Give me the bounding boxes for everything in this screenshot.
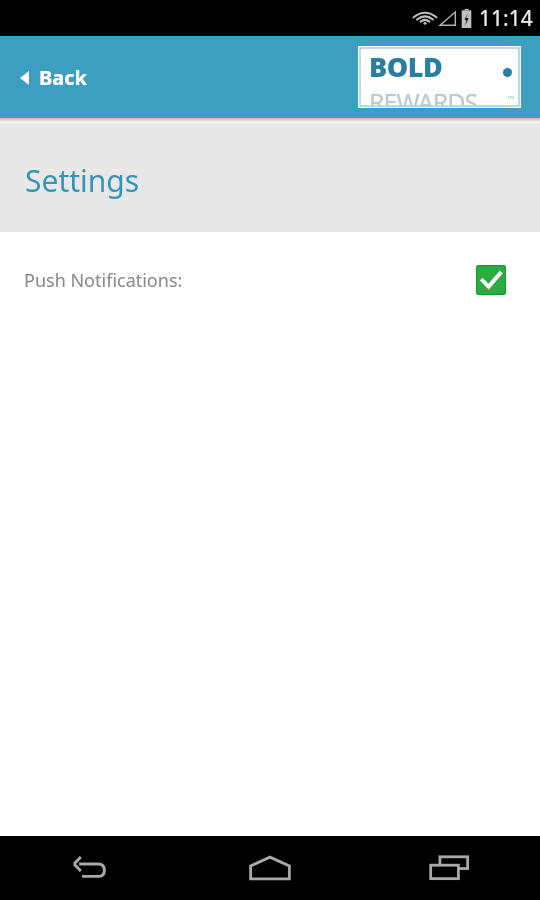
staticText: 11:14 — [479, 4, 533, 33]
staticText: Settings — [25, 160, 140, 201]
staticText: тм — [507, 93, 515, 101]
staticText: Push Notifications: — [24, 268, 183, 293]
button[interactable]: Push notifications enabled — [476, 265, 506, 295]
staticText: Back — [39, 64, 87, 91]
staticText: BOLD — [369, 48, 443, 85]
button[interactable]: Back — [0, 54, 105, 101]
button[interactable]: Home — [180, 836, 360, 900]
button[interactable]: Recent apps — [360, 836, 540, 900]
button[interactable]: Bold Rewards — [360, 48, 519, 106]
button[interactable]: Push Notifications: — [0, 232, 540, 328]
button[interactable]: Back — [0, 836, 180, 900]
staticText: REWARDS — [369, 85, 478, 106]
